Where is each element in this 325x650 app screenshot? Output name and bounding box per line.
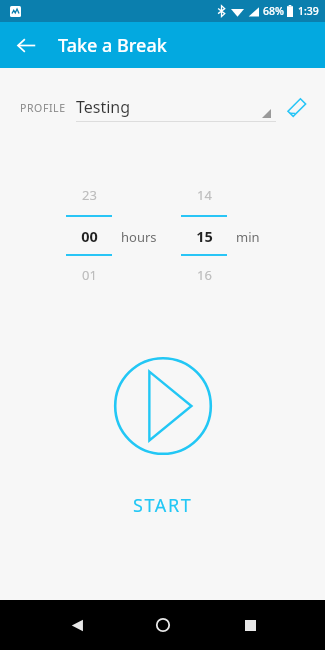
staticText: hours xyxy=(121,228,157,246)
button[interactable]: START xyxy=(111,487,215,524)
staticText: 15 xyxy=(196,226,213,246)
staticText: 00 xyxy=(81,226,98,246)
staticText: 1:39 xyxy=(298,4,319,18)
staticText: Take a Break xyxy=(58,33,167,58)
button[interactable]: Start break xyxy=(113,356,213,456)
button[interactable]: 14 xyxy=(181,180,227,294)
staticText: 23 xyxy=(82,186,97,204)
button[interactable]: Back xyxy=(12,31,40,59)
button[interactable]: 23 xyxy=(66,180,112,294)
staticText: 14 xyxy=(197,186,212,204)
button[interactable]: Home xyxy=(146,608,180,642)
staticText: 16 xyxy=(197,266,212,284)
button[interactable]: Testing xyxy=(76,95,276,122)
staticText: Testing xyxy=(76,96,131,118)
staticText: min xyxy=(236,228,260,246)
staticText: 01 xyxy=(82,266,97,284)
button[interactable]: Recent apps xyxy=(233,608,267,642)
staticText: 68% xyxy=(263,4,284,18)
staticText: PROFILE xyxy=(20,101,66,115)
button[interactable]: Back xyxy=(60,608,94,642)
button[interactable]: Edit profile xyxy=(279,91,313,125)
staticText: START xyxy=(133,493,193,518)
